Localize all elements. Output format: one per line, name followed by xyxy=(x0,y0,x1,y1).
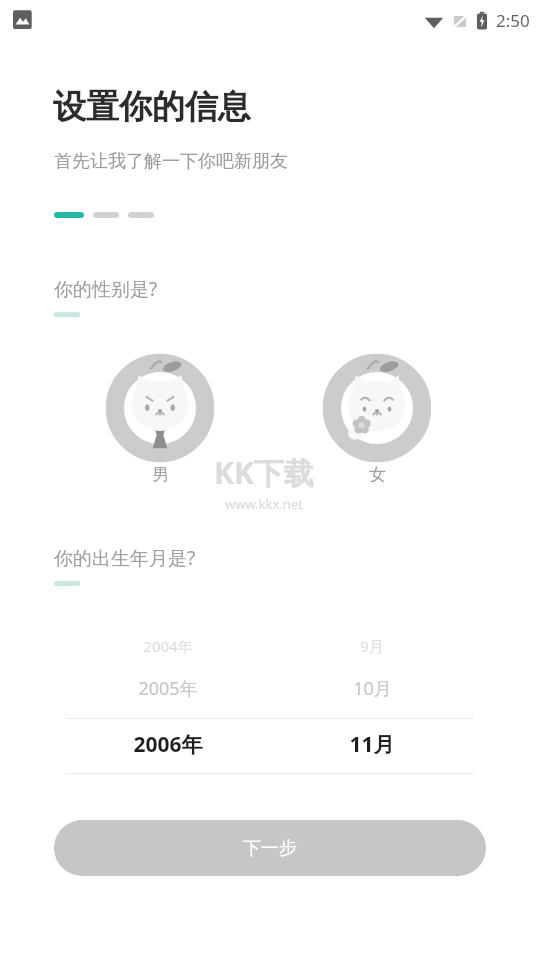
button[interactable]: 女 xyxy=(329,358,425,485)
staticText: 2:50 xyxy=(496,9,530,32)
staticText: 2006年 xyxy=(133,730,203,759)
staticText: 首先让我了解一下你吧新朋友 xyxy=(54,150,288,173)
button[interactable]: 男 xyxy=(112,358,208,485)
staticText: 你的性别是? xyxy=(54,276,158,302)
staticText: 下一步 xyxy=(243,837,297,860)
staticText: 设置你的信息 xyxy=(53,86,251,128)
staticText: 11月 xyxy=(349,730,395,759)
staticText: 2005年 xyxy=(138,676,198,701)
staticText: 女 xyxy=(369,464,386,485)
button[interactable]: 2004年 xyxy=(98,620,238,780)
staticText: 2004年 xyxy=(143,636,193,656)
staticText: 你的出生年月是? xyxy=(54,545,196,571)
other: No SIM xyxy=(451,12,469,30)
button[interactable]: 9月 xyxy=(302,620,442,780)
other: Wi-Fi xyxy=(424,11,444,31)
staticText: KK下载 xyxy=(214,452,314,493)
other: Battery charging xyxy=(476,11,488,31)
staticText: 10月 xyxy=(353,676,392,701)
staticText: 男 xyxy=(152,464,169,485)
other: Screenshot xyxy=(13,9,35,31)
staticText: 9月 xyxy=(360,636,384,656)
staticText: www.kkx.net xyxy=(225,495,303,513)
button[interactable]: 下一步 xyxy=(54,820,486,876)
